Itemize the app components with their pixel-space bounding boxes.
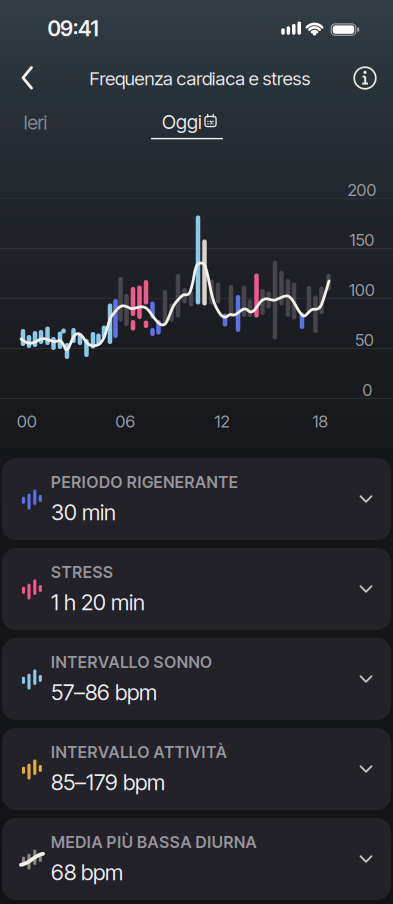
staticText: 100 [349,280,375,300]
staticText: 18 [312,411,327,432]
staticText: PERIODO RIGENERANTE [51,472,238,492]
staticText: 200 [347,180,376,200]
staticText: 09:41 [47,16,98,41]
button[interactable]: INTERVALLO ATTIVITÀ [2,728,391,810]
button[interactable]: PERIODO RIGENERANTE [2,458,391,540]
staticText: 0 [362,380,372,400]
staticText: 06 [115,411,134,432]
staticText: 1 h 20 min [51,589,145,615]
staticText: 30 min [51,499,116,525]
button[interactable]: STRESS [2,548,391,630]
staticText: 150 [349,230,374,250]
staticText: 57–86 bpm [51,679,157,705]
staticText: 50 [355,330,374,350]
staticText: 12 [214,411,229,432]
staticText: STRESS [51,562,113,582]
button[interactable]: MEDIA PIÙ BASSA DIURNA [2,818,391,900]
button[interactable]: INTERVALLO SONNO [2,638,391,720]
staticText: Ieri [23,111,47,134]
staticText: Frequenza cardiaca e stress [90,67,310,90]
staticText: Oggi [162,110,202,134]
button[interactable]: Info [343,56,387,100]
button[interactable]: Back [5,56,49,100]
staticText: INTERVALLO SONNO [51,652,212,672]
button[interactable]: Oggi [147,108,227,142]
staticText: 85–179 bpm [51,769,165,795]
staticText: INTERVALLO ATTIVITÀ [51,742,227,762]
staticText: MEDIA PIÙ BASSA DIURNA [51,832,257,852]
staticText: 00 [17,411,37,432]
staticText: 68 bpm [51,859,123,885]
button[interactable]: Ieri [13,107,57,137]
